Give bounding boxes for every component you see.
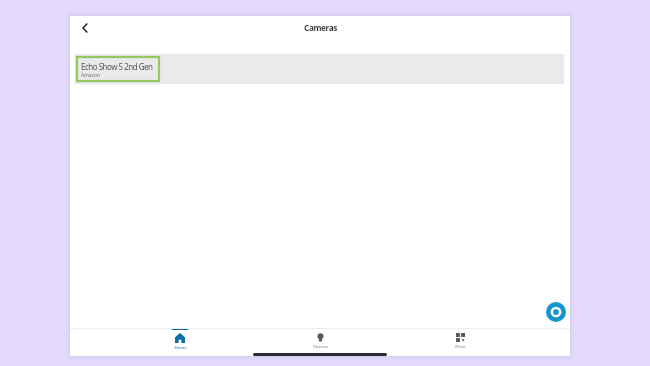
staticText: More xyxy=(455,344,466,350)
button[interactable]: Echo Show 5 2nd Gen xyxy=(75,54,564,84)
button[interactable]: Devices xyxy=(250,329,390,353)
button[interactable]: Back xyxy=(73,17,95,39)
staticText: Cameras xyxy=(304,22,337,33)
staticText: Amazon xyxy=(81,72,101,79)
staticText: Echo Show 5 2nd Gen xyxy=(81,61,153,72)
staticText: Devices xyxy=(313,344,328,350)
button[interactable]: More xyxy=(390,329,530,353)
button[interactable]: Home xyxy=(110,329,250,353)
staticText: Home xyxy=(174,345,187,351)
button[interactable]: Alexa xyxy=(546,302,566,322)
